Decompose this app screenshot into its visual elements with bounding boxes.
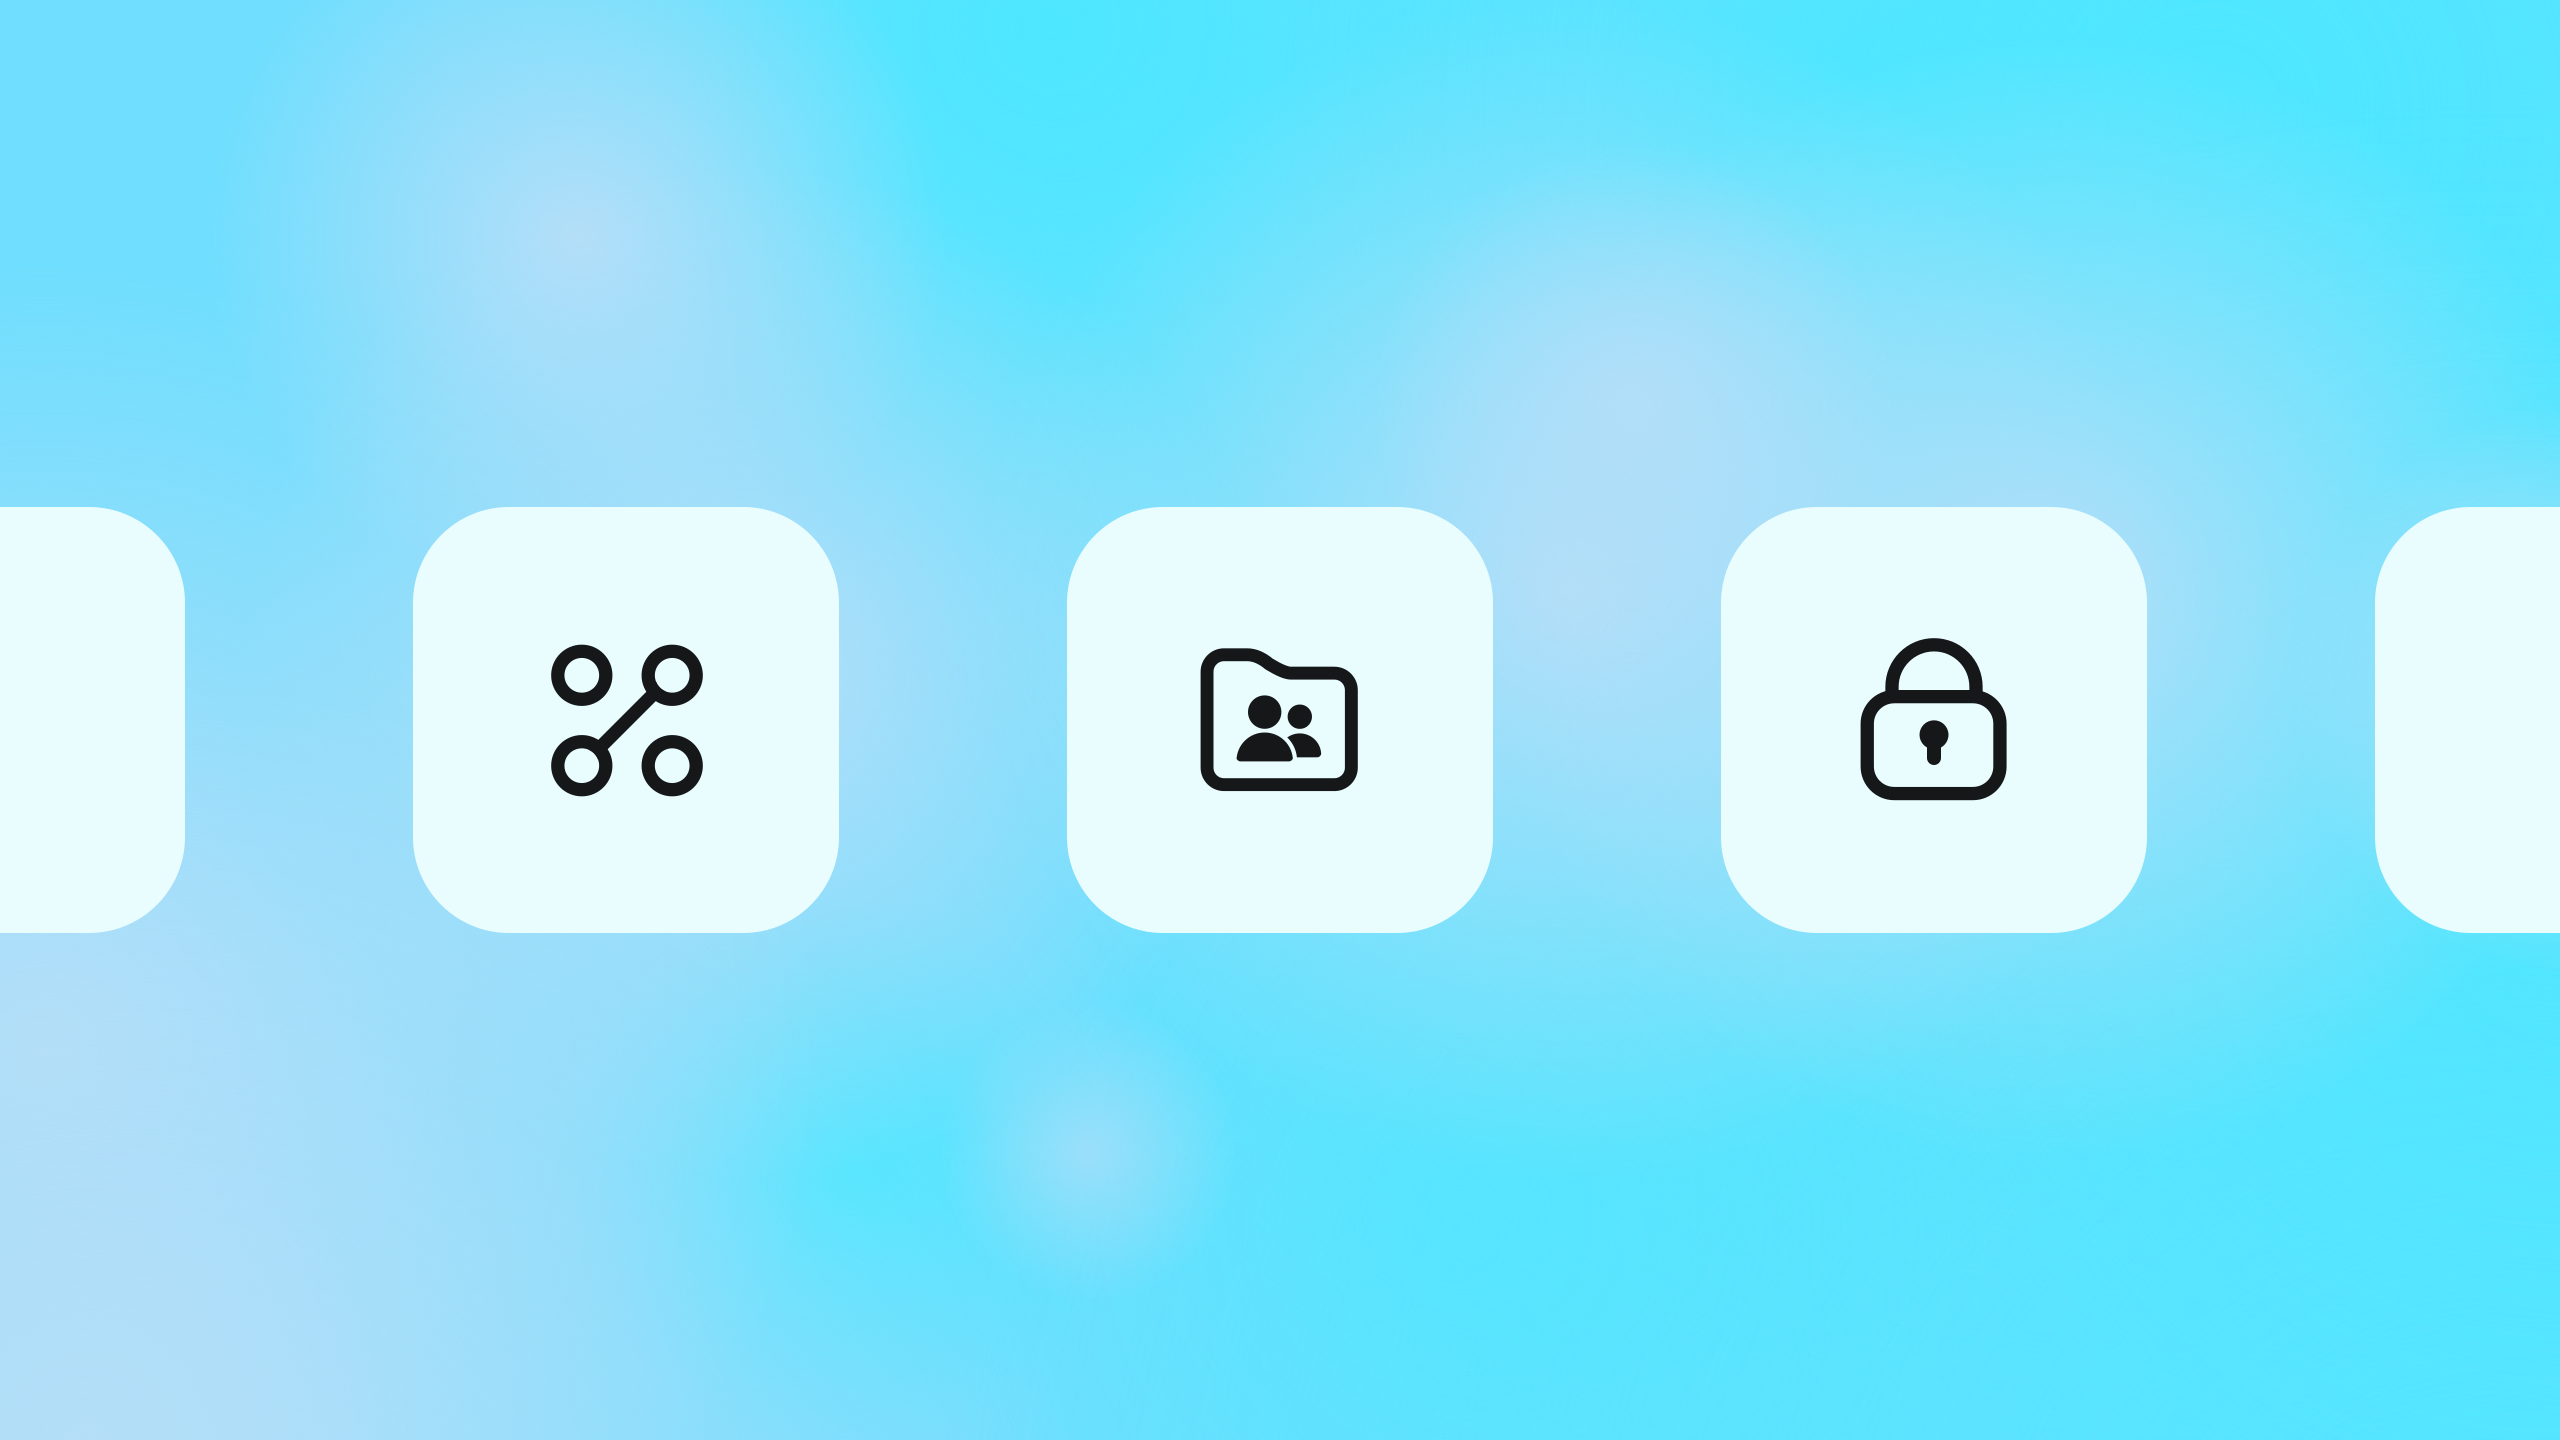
button[interactable]: Shared folder <box>1067 507 1493 933</box>
button[interactable]: More <box>0 507 185 933</box>
button[interactable]: Connections <box>413 507 839 933</box>
button[interactable]: More <box>2375 507 2560 933</box>
button[interactable]: Privacy lock <box>1721 507 2147 933</box>
